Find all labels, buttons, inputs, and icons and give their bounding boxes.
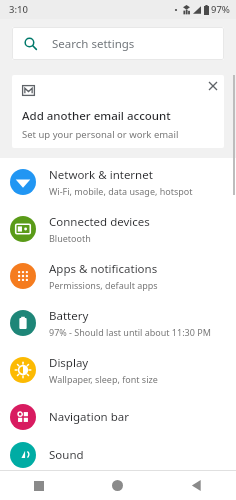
button[interactable]: Back (157, 471, 236, 500)
staticText: Set up your personal or work email (22, 128, 179, 141)
staticText: Network & internet (49, 167, 153, 183)
staticText: Search settings (52, 36, 135, 52)
staticText: Navigation bar (49, 409, 129, 425)
button[interactable]: Battery (0, 299, 236, 346)
button[interactable]: Home (78, 471, 157, 500)
staticText: Wi-Fi, mobile, data usage, hotspot (49, 185, 193, 197)
staticText: Permissions, default apps (49, 279, 158, 291)
staticText: Apps & notifications (49, 261, 158, 277)
staticText: Connected devices (49, 214, 150, 230)
staticText: Sound (49, 447, 84, 463)
staticText: 97% (211, 3, 230, 16)
button[interactable]: Network & internet (0, 158, 236, 205)
staticText: Add another email account (22, 108, 171, 124)
button[interactable]: Navigation bar (0, 393, 236, 440)
button[interactable]: Sound (0, 440, 236, 470)
button[interactable]: Add another email account (12, 75, 224, 148)
staticText: 3:10 (9, 3, 28, 16)
staticText: Battery (49, 308, 89, 324)
staticText: Display (49, 355, 89, 371)
staticText: Bluetooth (49, 232, 91, 244)
button[interactable]: Connected devices (0, 205, 236, 252)
button[interactable]: Recent apps (0, 471, 78, 500)
button[interactable]: Dismiss (202, 75, 224, 97)
button[interactable]: Display (0, 346, 236, 393)
button[interactable]: Search settings (12, 27, 224, 60)
staticText: 97% - Should last until about 11:30 PM (49, 326, 211, 338)
button[interactable]: Apps & notifications (0, 252, 236, 299)
staticText: Wallpaper, sleep, font size (49, 373, 158, 385)
